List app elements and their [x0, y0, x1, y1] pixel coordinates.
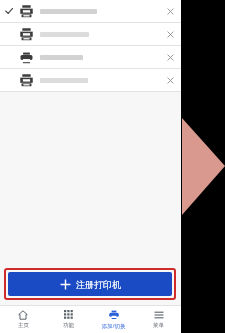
button[interactable]: Remove printer	[0, 69, 181, 91]
button[interactable]: Remove printer	[159, 46, 181, 68]
staticText: 添加/切换	[101, 322, 126, 330]
staticText: 功能	[63, 322, 74, 329]
staticText: 注册打印机	[76, 279, 121, 290]
button[interactable]: Remove printer	[0, 46, 181, 68]
button[interactable]: Remove printer	[159, 69, 181, 91]
button[interactable]: 注册打印机	[8, 272, 172, 296]
staticText: 主页	[18, 322, 29, 329]
button[interactable]: 功能	[46, 306, 91, 333]
button[interactable]: 添加/切换	[91, 306, 136, 333]
button[interactable]: Remove printer	[0, 0, 181, 22]
staticText: 菜单	[153, 322, 164, 329]
button[interactable]: 主页	[0, 306, 46, 333]
button[interactable]: Remove printer	[0, 23, 181, 45]
button[interactable]: 菜单	[136, 306, 181, 333]
button[interactable]: Remove printer	[159, 23, 181, 45]
button[interactable]: Remove printer	[159, 0, 181, 22]
